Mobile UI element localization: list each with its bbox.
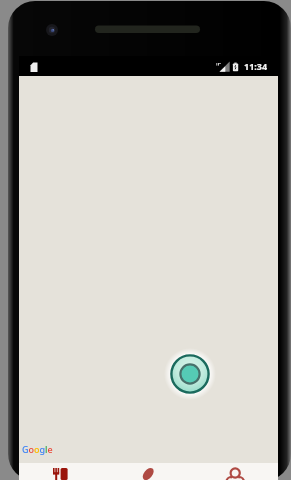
button[interactable] xyxy=(164,348,216,400)
button[interactable] xyxy=(192,463,278,480)
button[interactable] xyxy=(19,463,106,480)
button[interactable] xyxy=(106,463,192,480)
staticText: 11:34 xyxy=(244,60,268,72)
staticText: Google xyxy=(22,443,53,455)
